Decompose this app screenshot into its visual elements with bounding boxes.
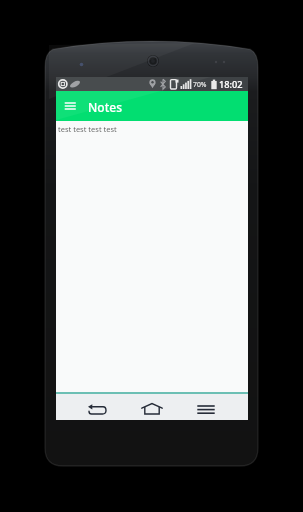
staticText: 18:02: [219, 78, 243, 91]
staticText: 70%: [193, 80, 207, 89]
staticText: Notes: [88, 99, 122, 115]
staticText: test test test test: [58, 124, 117, 134]
